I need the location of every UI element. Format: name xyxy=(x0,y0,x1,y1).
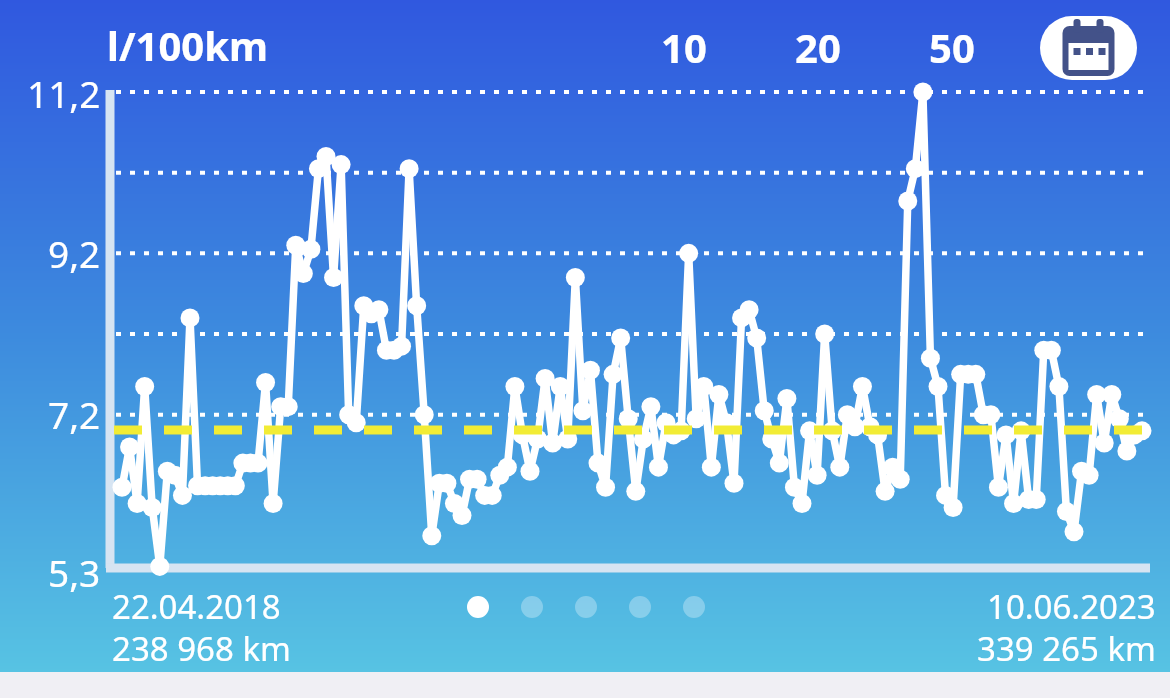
button[interactable]: Select date range xyxy=(1040,16,1137,80)
